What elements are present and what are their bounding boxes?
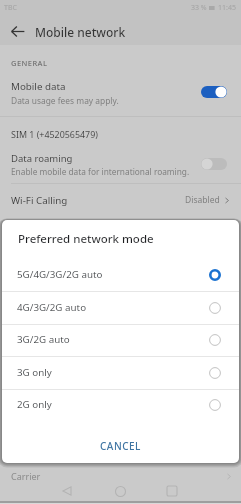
staticText: Carrier bbox=[11, 470, 226, 482]
staticText: 33 % bbox=[191, 3, 207, 13]
button[interactable]: Back bbox=[5, 19, 30, 44]
staticText: Wi-Fi Calling bbox=[11, 194, 185, 207]
staticText: 11:45 bbox=[218, 3, 236, 13]
staticText: Mobile data bbox=[11, 80, 66, 93]
staticText: Data usage fees may apply. bbox=[11, 95, 119, 106]
button[interactable]: 4G/3G/2G auto bbox=[2, 291, 239, 324]
button[interactable]: On bbox=[201, 86, 227, 98]
button[interactable]: 3G/2G auto bbox=[207, 332, 223, 348]
button[interactable]: Off bbox=[201, 158, 227, 170]
staticText: SIM 1 (+4520565479) bbox=[11, 128, 98, 140]
button[interactable]: 3G only bbox=[207, 365, 223, 381]
staticText: 3G only bbox=[17, 366, 207, 379]
button[interactable]: 5G/4G/3G/2G auto bbox=[207, 267, 223, 283]
button[interactable]: 4G/3G/2G auto bbox=[207, 300, 223, 316]
staticText: 3G/2G auto bbox=[17, 333, 207, 346]
button[interactable]: Back bbox=[56, 480, 78, 502]
staticText: CANCEL bbox=[100, 439, 141, 453]
staticText: 2G only bbox=[17, 398, 207, 411]
staticText: TBC bbox=[4, 3, 17, 13]
button[interactable]: Home bbox=[109, 480, 131, 502]
button[interactable]: Wi-Fi Calling bbox=[0, 184, 241, 216]
staticText: Enable mobile data for international roa… bbox=[11, 166, 190, 177]
button[interactable]: 2G only bbox=[2, 388, 239, 421]
button[interactable]: 5G/4G/3G/2G auto bbox=[2, 258, 239, 291]
button[interactable]: 2G only bbox=[207, 397, 223, 413]
staticText: 4G/3G/2G auto bbox=[17, 301, 207, 314]
staticText: Mobile network bbox=[35, 24, 126, 40]
button[interactable]: 3G only bbox=[2, 356, 239, 389]
staticText: Preferred network mode bbox=[18, 231, 154, 247]
button[interactable]: 3G/2G auto bbox=[2, 323, 239, 356]
staticText: Disabled bbox=[185, 194, 220, 206]
staticText: GENERAL bbox=[11, 58, 48, 68]
staticText: 5G/4G/3G/2G auto bbox=[17, 268, 207, 281]
button[interactable]: Carrier bbox=[0, 468, 241, 484]
staticText: Data roaming bbox=[11, 152, 73, 165]
button[interactable]: Recent apps bbox=[161, 480, 183, 502]
button[interactable]: CANCEL bbox=[86, 434, 155, 458]
